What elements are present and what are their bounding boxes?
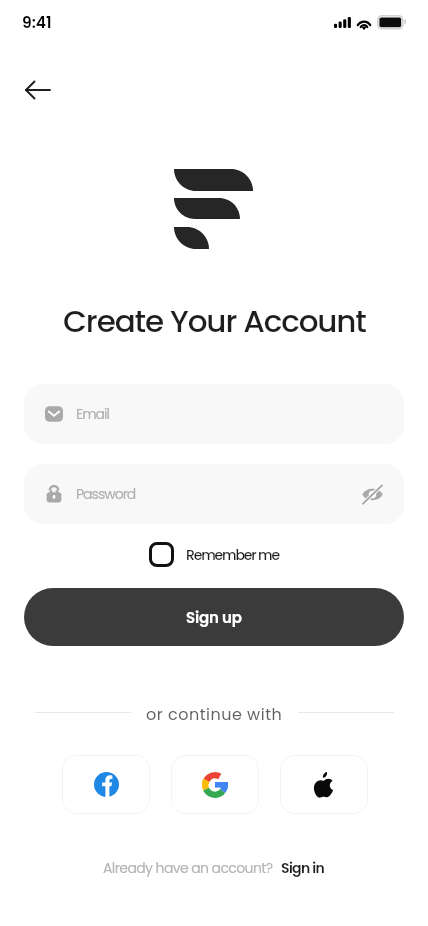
staticText: or continue with bbox=[146, 703, 283, 725]
staticText: Create Your Account bbox=[63, 299, 366, 342]
staticText: 9:41 bbox=[22, 12, 52, 34]
button[interactable]: Password bbox=[24, 464, 404, 524]
staticText: Password bbox=[76, 484, 136, 504]
button[interactable]: Back bbox=[14, 66, 62, 114]
button[interactable]: Email bbox=[24, 384, 404, 444]
button[interactable]: Sign up with Apple bbox=[280, 755, 368, 814]
button[interactable]: Sign up with Google bbox=[171, 755, 259, 814]
staticText: Sign up bbox=[186, 607, 242, 628]
button[interactable]: Remember me bbox=[149, 542, 279, 567]
button[interactable]: Sign up bbox=[24, 588, 404, 646]
button[interactable]: Sign up with Facebook bbox=[62, 755, 150, 814]
staticText: Email bbox=[76, 404, 109, 424]
button[interactable]: Show password bbox=[358, 480, 386, 508]
staticText: Remember me bbox=[186, 545, 279, 565]
button[interactable]: Sign in bbox=[281, 858, 325, 878]
staticText: Already have an account? bbox=[103, 858, 273, 878]
staticText: Sign in bbox=[281, 858, 325, 878]
